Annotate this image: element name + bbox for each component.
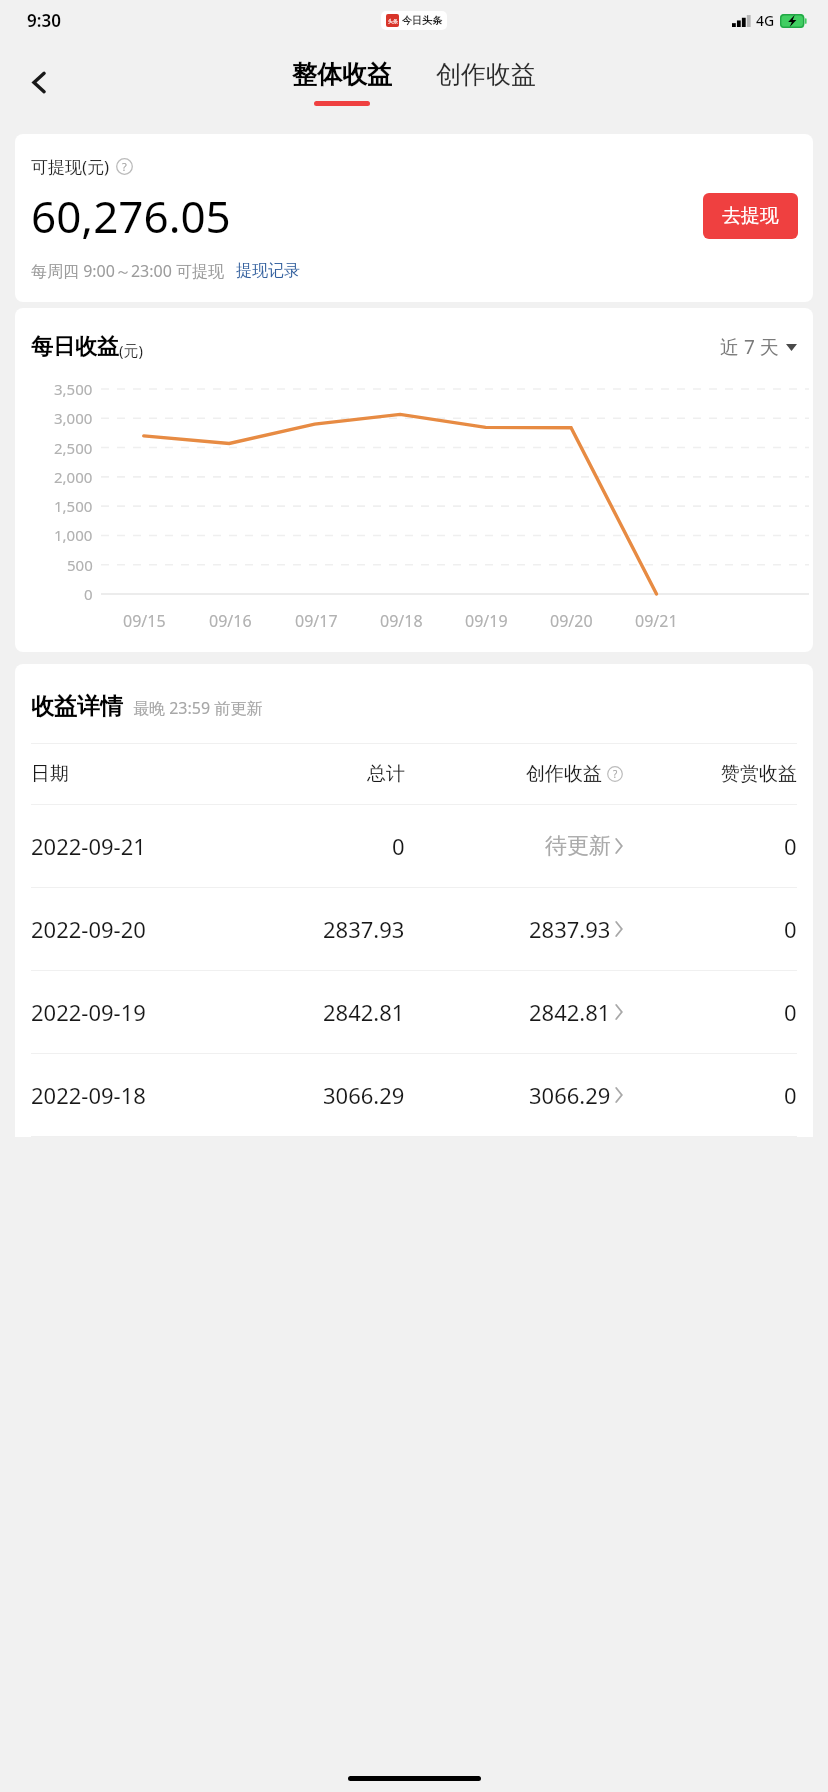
button[interactable]: 2022-09-21 [15, 805, 813, 887]
button[interactable]: 创作收益 [430, 59, 542, 90]
staticText: 赞赏收益 [721, 762, 797, 786]
staticText: 创作收益 [436, 59, 536, 90]
staticText: (元) [119, 340, 144, 360]
staticText: 2022-09-20 [31, 914, 146, 944]
staticText: 09/20 [550, 610, 593, 632]
staticText: 0 [784, 1080, 797, 1110]
staticText: 2842.81 [529, 997, 611, 1027]
staticText: 待更新 [545, 832, 611, 860]
staticText: 2022-09-18 [31, 1080, 146, 1110]
button[interactable]: Back [14, 57, 64, 107]
staticText: 今日头条 [402, 14, 442, 27]
staticText: 09/15 [123, 610, 166, 632]
staticText: 总计 [367, 762, 405, 786]
staticText: 收益详情 [31, 692, 123, 721]
button[interactable]: 2022-09-18 [15, 1054, 813, 1136]
staticText: 9:30 [27, 9, 61, 32]
staticText: 3,000 [54, 408, 93, 428]
staticText: ? [613, 767, 618, 781]
staticText: 提现记录 [236, 261, 300, 281]
staticText: 4G [756, 11, 775, 30]
staticText: 每周四 9:00～23:00 可提现 [31, 260, 224, 282]
staticText: 0 [84, 584, 93, 604]
staticText: 日期 [31, 762, 69, 786]
staticText: 0 [392, 831, 405, 861]
staticText: 2842.81 [323, 997, 405, 1027]
staticText: 09/16 [209, 610, 252, 632]
staticText: 1,000 [54, 525, 93, 545]
staticText: 3066.29 [323, 1080, 405, 1110]
staticText: 去提现 [722, 204, 779, 228]
button[interactable]: 整体收益 [286, 59, 398, 106]
staticText: 2,500 [54, 438, 93, 458]
staticText: 近 7 天 [720, 334, 779, 360]
button[interactable]: 近 7 天 [720, 334, 797, 360]
staticText: 头条 [388, 18, 398, 24]
staticText: 09/21 [635, 610, 678, 632]
staticText: 3,500 [54, 379, 93, 399]
staticText: 0 [784, 914, 797, 944]
staticText: ? [122, 159, 127, 174]
staticText: 500 [67, 555, 93, 575]
staticText: 09/19 [465, 610, 508, 632]
staticText: 创作收益 [526, 762, 602, 786]
staticText: 60,276.05 [31, 186, 231, 246]
staticText: 09/18 [380, 610, 423, 632]
button[interactable]: 说明 [607, 766, 623, 782]
staticText: 2022-09-21 [31, 831, 146, 861]
staticText: 可提现(元) [31, 155, 110, 178]
staticText: 0 [784, 831, 797, 861]
staticText: 09/17 [295, 610, 338, 632]
staticText: 整体收益 [292, 59, 392, 90]
staticText: 1,500 [54, 496, 93, 516]
staticText: 2,000 [54, 467, 93, 487]
button[interactable]: 去提现 [703, 193, 798, 239]
staticText: 2837.93 [529, 914, 611, 944]
button[interactable]: 说明 [116, 158, 133, 175]
staticText: 0 [784, 997, 797, 1027]
button[interactable]: 提现记录 [236, 261, 300, 281]
button[interactable]: 2022-09-19 [15, 971, 813, 1053]
staticText: 每日收益 [31, 333, 119, 361]
staticText: 最晚 23:59 前更新 [133, 697, 263, 719]
staticText: 3066.29 [529, 1080, 611, 1110]
button[interactable]: 2022-09-20 [15, 888, 813, 970]
staticText: 2837.93 [323, 914, 405, 944]
staticText: 2022-09-19 [31, 997, 146, 1027]
